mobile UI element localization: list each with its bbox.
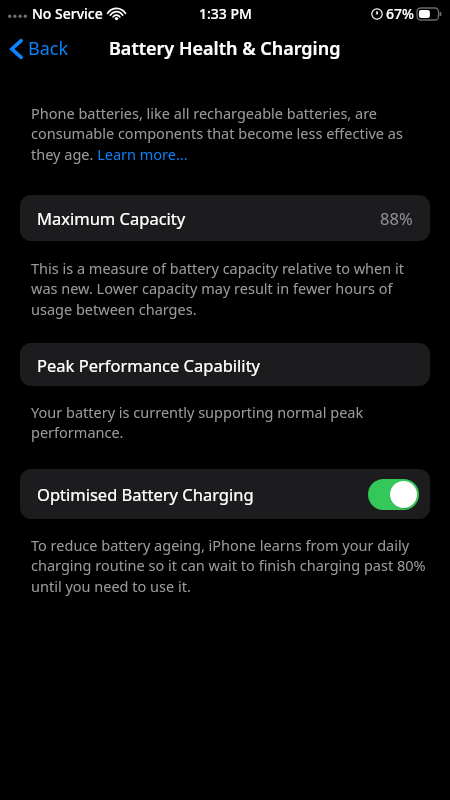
staticText: To reduce battery ageing, iPhone learns … xyxy=(31,535,426,597)
staticText: 1:33 PM xyxy=(199,4,252,23)
staticText: 67% xyxy=(386,4,414,23)
staticText: No Service xyxy=(32,4,103,23)
staticText: Optimised Battery Charging xyxy=(37,483,254,505)
staticText: Back xyxy=(28,36,69,61)
staticText: Maximum Capacity xyxy=(37,207,186,229)
button[interactable]: Peak Performance Capability xyxy=(20,343,430,386)
staticText: Your battery is currently supporting nor… xyxy=(31,402,426,443)
button[interactable]: Optimised Battery Charging xyxy=(20,469,430,519)
button[interactable]: Optimised Battery Charging toggle xyxy=(368,479,419,510)
staticText: Battery Health & Charging xyxy=(109,36,341,61)
staticText: This is a measure of battery capacity re… xyxy=(31,258,426,320)
staticText: Phone batteries, like all rechargeable b… xyxy=(31,103,426,165)
button[interactable]: Maximum Capacity xyxy=(20,195,430,241)
staticText: 88% xyxy=(380,207,413,229)
staticText: Peak Performance Capability xyxy=(37,354,260,376)
button[interactable]: Back xyxy=(0,30,77,67)
